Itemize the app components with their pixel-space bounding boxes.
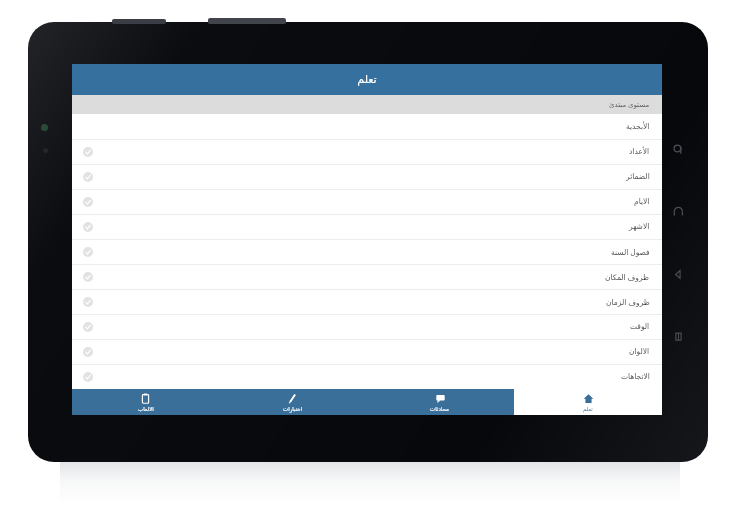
staticText: الالوان [629, 347, 650, 356]
button[interactable]: ظروف المكان [72, 264, 662, 289]
button[interactable]: الضمائر [72, 164, 662, 189]
button[interactable]: الايام [72, 189, 662, 214]
staticText: مستوى مبتدئ [609, 100, 650, 110]
staticText: فصول السنة [611, 247, 650, 257]
other: Learn [583, 393, 594, 404]
button[interactable]: الاتجاهات [72, 364, 662, 389]
button[interactable]: Conversations [366, 389, 514, 415]
button[interactable]: فصول السنة [72, 239, 662, 264]
staticText: الضمائر [626, 172, 650, 181]
staticText: الوقت [630, 322, 650, 331]
staticText: ظروف الزمان [606, 297, 650, 307]
button[interactable]: Learn [514, 389, 662, 415]
staticText: الأبجدية [626, 122, 650, 131]
button[interactable]: الأعداد [72, 139, 662, 164]
other: Conversations [435, 393, 446, 404]
button[interactable]: الالوان [72, 339, 662, 364]
staticText: الاتجاهات [621, 372, 650, 381]
staticText: ظروف المكان [605, 272, 650, 282]
staticText: تعلم [357, 73, 377, 86]
button[interactable]: الوقت [72, 314, 662, 339]
button[interactable]: ظروف الزمان [72, 289, 662, 314]
staticText: اختبارات [283, 406, 303, 412]
button[interactable]: الأبجدية [72, 114, 662, 139]
staticText: الأعداد [629, 147, 650, 156]
staticText: تعلم [583, 406, 593, 412]
button[interactable]: الاشهر [72, 214, 662, 239]
button[interactable]: Tests [219, 389, 366, 415]
other: Tests [287, 393, 298, 404]
staticText: الايام [634, 197, 650, 206]
staticText: محادثات [430, 406, 450, 412]
staticText: الاشهر [629, 222, 650, 231]
button[interactable]: Games [72, 389, 219, 415]
staticText: الالعاب [138, 406, 154, 412]
other: Games [140, 393, 151, 404]
